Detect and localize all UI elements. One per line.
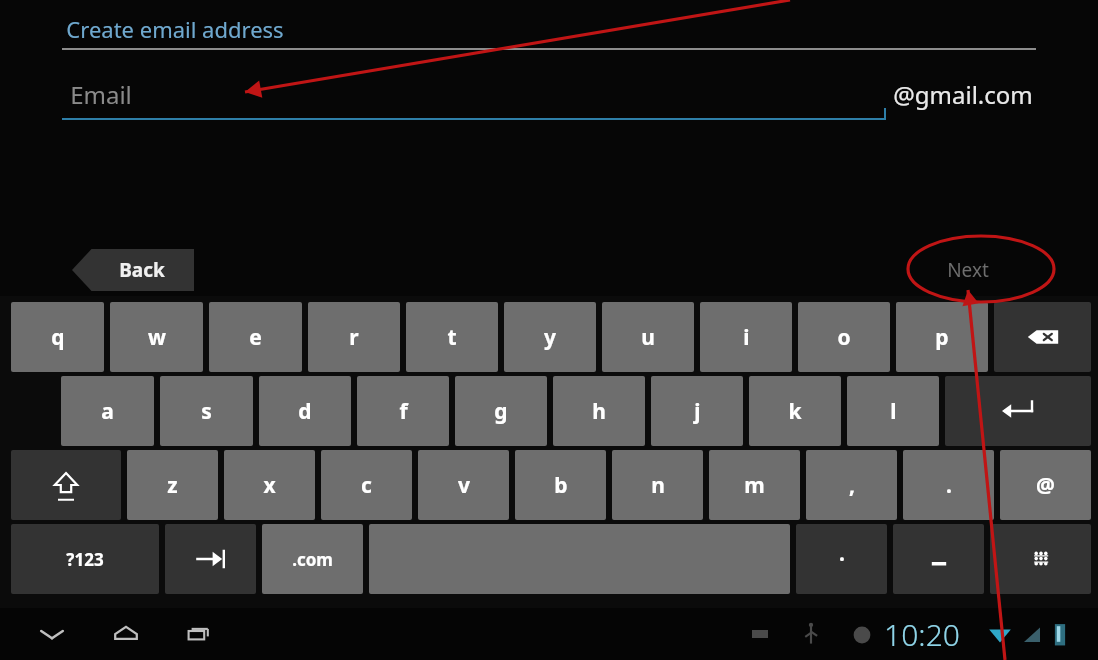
button[interactable]: Keyboard settings [990,524,1091,594]
staticText: t [447,323,457,352]
staticText: y [544,323,556,352]
button[interactable]: g [455,376,547,446]
button[interactable]: m [709,450,800,520]
staticText: · [839,545,845,574]
button[interactable]: o [798,302,890,372]
button[interactable]: f [357,376,449,446]
button[interactable]: i [700,302,792,372]
staticText: i [743,323,750,352]
button[interactable]: j [651,376,743,446]
button[interactable]: Home [104,616,148,652]
button[interactable]: Next [918,249,1018,291]
button[interactable]: Underscore [893,524,984,594]
button[interactable]: · [796,524,887,594]
button[interactable]: s [160,376,253,446]
staticText: x [263,471,276,500]
staticText: v [458,471,470,500]
staticText: . [946,471,952,500]
button[interactable]: . [903,450,994,520]
staticText: q [51,323,65,352]
staticText: Next [947,257,989,283]
button[interactable]: Shift [11,450,121,520]
staticText: s [201,397,212,426]
button[interactable]: w [110,302,203,372]
button[interactable]: e [209,302,302,372]
button[interactable]: h [553,376,645,446]
staticText: w [148,323,166,352]
staticText: h [592,397,606,426]
button[interactable]: Hide keyboard [30,616,74,652]
button[interactable]: Backspace [994,302,1091,372]
staticText: 10:20 [884,614,960,655]
button[interactable]: , [806,450,897,520]
staticText: d [298,397,312,426]
button[interactable]: u [602,302,694,372]
staticText: @ [1036,471,1055,500]
button[interactable]: z [127,450,218,520]
button[interactable]: Recent apps [178,616,222,652]
staticText: u [641,323,655,352]
staticText: .com [292,548,333,571]
staticText: Back [119,257,165,283]
staticText: f [399,397,408,426]
staticText: Create email address [66,14,284,44]
button[interactable]: d [259,376,351,446]
button[interactable]: ?123 [11,524,159,594]
button[interactable]: k [749,376,841,446]
button[interactable]: x [224,450,315,520]
button[interactable]: n [612,450,703,520]
button[interactable]: @ [1000,450,1091,520]
staticText: Email [70,78,132,111]
button[interactable]: Tab [165,524,256,594]
button[interactable]: q [11,302,104,372]
staticText: l [890,397,897,426]
button[interactable]: a [61,376,154,446]
button[interactable]: l [847,376,939,446]
staticText: g [494,397,508,426]
button[interactable]: c [321,450,412,520]
staticText: m [744,471,765,500]
button[interactable]: v [418,450,509,520]
button[interactable]: r [308,302,400,372]
staticText: r [349,323,359,352]
staticText: a [101,397,114,426]
button[interactable]: Enter [945,376,1091,446]
staticText: ?123 [66,548,104,571]
button[interactable]: .com [262,524,363,594]
staticText: c [361,471,372,500]
staticText: j [694,397,701,426]
staticText: p [935,323,949,352]
staticText: o [837,323,851,352]
button[interactable]: y [504,302,596,372]
button[interactable]: t [406,302,498,372]
staticText: b [554,471,568,500]
button[interactable]: Back [72,249,194,291]
staticText: e [249,323,262,352]
button[interactable]: b [515,450,606,520]
staticText: , [849,471,855,500]
staticText: z [167,471,178,500]
staticText: k [788,397,802,426]
staticText: @gmail.com [893,78,1033,111]
button[interactable]: p [896,302,988,372]
staticText: n [651,471,665,500]
